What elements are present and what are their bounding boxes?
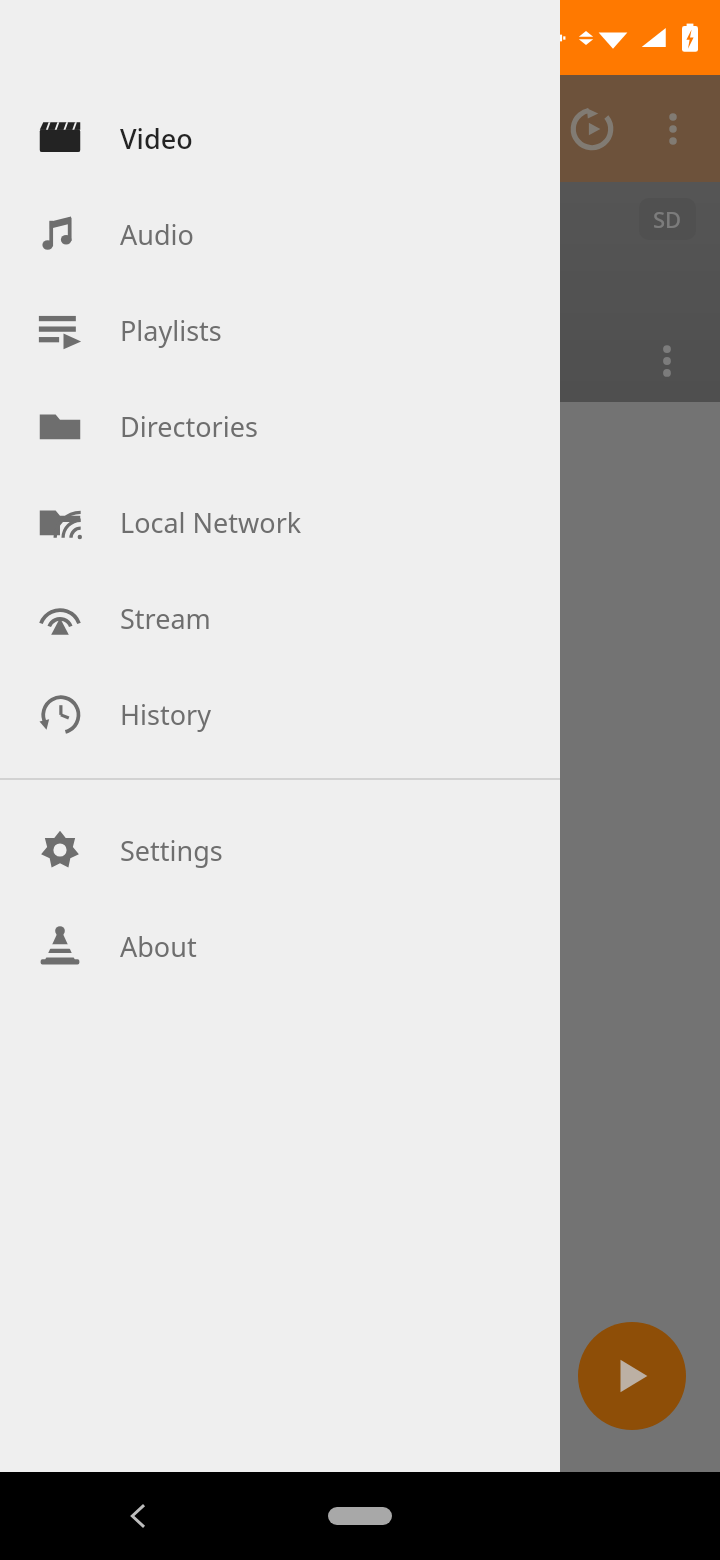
staticText: Video (120, 120, 193, 157)
staticText: Directories (120, 408, 258, 445)
button[interactable]: Local Network (0, 474, 560, 570)
staticText: 4902 (4, 338, 69, 376)
staticText: Settings (120, 832, 223, 869)
staticText: Audio (120, 216, 194, 253)
button[interactable]: Home (328, 1507, 392, 1525)
button[interactable]: Play (578, 1322, 686, 1430)
staticText: About (120, 928, 197, 965)
button[interactable]: Stream (0, 570, 560, 666)
button[interactable]: SD (0, 182, 720, 402)
staticText: Playlists (120, 312, 222, 349)
button[interactable]: Playlists (0, 282, 560, 378)
button[interactable]: History (0, 666, 560, 762)
staticText: Stream (120, 600, 211, 637)
button[interactable]: Item options (644, 338, 690, 384)
button[interactable]: About (0, 898, 560, 994)
button[interactable]: Back (118, 1495, 160, 1537)
button[interactable]: Resume playback (566, 103, 618, 155)
button[interactable]: Audio (0, 186, 560, 282)
staticText: History (120, 696, 211, 733)
staticText: SD (653, 204, 682, 234)
button[interactable]: Settings (0, 802, 560, 898)
button[interactable]: Directories (0, 378, 560, 474)
button[interactable]: Video (0, 90, 560, 186)
staticText: Local Network (120, 504, 302, 541)
button[interactable]: More options (648, 104, 698, 154)
